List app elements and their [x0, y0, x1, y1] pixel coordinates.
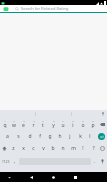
button[interactable]: App logo — [0, 5, 107, 12]
button[interactable]: a — [2, 130, 13, 142]
staticText: 8 — [72, 119, 74, 122]
button[interactable]: 2 — [9, 118, 18, 130]
button[interactable]: c — [28, 142, 38, 154]
staticText: q — [3, 122, 7, 129]
staticText: ! — [82, 145, 84, 152]
staticText: h — [58, 133, 62, 140]
button[interactable]: x — [18, 142, 28, 154]
button[interactable]: l — [85, 130, 95, 142]
staticText: b — [51, 145, 55, 152]
button[interactable]: 6 — [48, 118, 58, 130]
button[interactable]: ?123 — [0, 154, 12, 168]
button[interactable]: n — [58, 142, 68, 154]
button[interactable]: Home — [49, 173, 58, 182]
staticText: a — [6, 133, 9, 140]
button[interactable]: ? — [88, 142, 98, 154]
button[interactable]: Shift — [0, 142, 9, 154]
staticText: j — [69, 133, 71, 140]
button[interactable]: h — [55, 130, 65, 142]
other: Keyboard settings — [101, 112, 105, 116]
staticText: x — [22, 145, 25, 152]
staticText: o — [81, 122, 85, 129]
button[interactable]: 4 — [28, 118, 38, 130]
staticText: . — [94, 158, 96, 164]
button[interactable]: 1 — [0, 118, 9, 130]
staticText: 4 — [33, 119, 35, 122]
staticText: e — [22, 122, 25, 129]
staticText: g — [48, 133, 52, 140]
button[interactable]: z — [9, 142, 18, 154]
button[interactable]: Hide keyboard — [6, 174, 12, 180]
staticText: 1 — [4, 119, 6, 122]
other: Search — [15, 7, 19, 11]
staticText: 0 — [92, 119, 94, 122]
button[interactable]: 9 — [78, 118, 88, 130]
staticText: c — [32, 145, 35, 152]
button[interactable]: b — [48, 142, 58, 154]
staticText: 5 — [42, 119, 44, 122]
button[interactable]: , — [12, 154, 18, 168]
staticText: u — [61, 122, 65, 129]
button[interactable]: d — [24, 130, 35, 142]
button[interactable]: 5 — [38, 118, 48, 130]
button[interactable]: 8 — [68, 118, 78, 130]
button[interactable]: Recent apps — [71, 173, 80, 182]
staticText: s — [17, 133, 20, 140]
button[interactable]: Enter — [95, 130, 107, 142]
staticText: r — [32, 122, 35, 129]
button[interactable]: 3 — [18, 118, 28, 130]
other: App logo — [3, 6, 9, 12]
staticText: y — [52, 122, 55, 129]
button[interactable]: j — [65, 130, 75, 142]
staticText: 2 — [13, 119, 15, 122]
button[interactable]: k — [75, 130, 85, 142]
staticText: 6 — [53, 119, 55, 122]
button[interactable]: Voice input — [98, 154, 107, 168]
button[interactable]: m — [68, 142, 78, 154]
staticText: m — [71, 145, 76, 152]
button[interactable]: Emoji — [98, 142, 107, 154]
staticText: w — [12, 122, 16, 129]
staticText: ?123 — [2, 159, 10, 164]
staticText: p — [91, 122, 95, 129]
staticText: f — [39, 133, 41, 140]
button[interactable]: g — [45, 130, 55, 142]
staticText: 9 — [82, 119, 84, 122]
button[interactable]: 0 — [88, 118, 98, 130]
button[interactable]: Backspace — [98, 118, 107, 130]
staticText: d — [28, 133, 32, 140]
button[interactable]: ! — [78, 142, 88, 154]
button[interactable]: Back — [27, 173, 36, 182]
staticText: n — [61, 145, 65, 152]
staticText: v — [42, 145, 45, 152]
staticText: 3 — [23, 119, 25, 122]
button[interactable]: 7 — [58, 118, 68, 130]
staticText: i — [72, 122, 74, 129]
staticText: l — [89, 133, 91, 140]
staticText: z — [12, 145, 15, 152]
staticText: ? — [92, 145, 95, 152]
staticText: 7 — [62, 119, 64, 122]
button[interactable] — [71, 110, 107, 118]
button[interactable]: v — [38, 142, 48, 154]
staticText: k — [79, 133, 82, 140]
staticText: t — [42, 122, 44, 129]
staticText: Search for Related Rating — [21, 6, 69, 11]
button[interactable]: f — [35, 130, 45, 142]
button[interactable]: s — [13, 130, 24, 142]
button[interactable]: . — [92, 154, 98, 168]
staticText: , — [14, 158, 16, 164]
